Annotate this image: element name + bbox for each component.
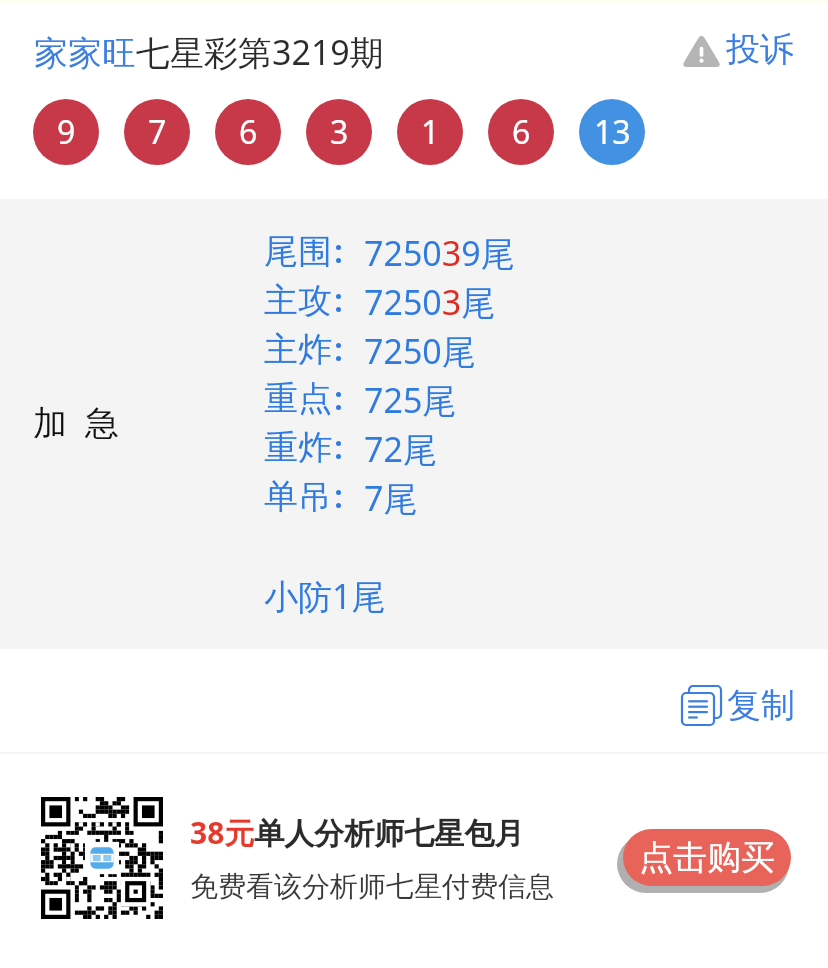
other: Copy <box>682 686 722 726</box>
staticText: 72尾 <box>364 426 437 472</box>
staticText: 72503尾 <box>364 279 496 325</box>
staticText: 725039尾 <box>364 230 515 276</box>
staticText: 单吊 <box>264 475 332 518</box>
button[interactable]: 13 <box>579 99 645 165</box>
staticText: 主攻 <box>264 279 332 322</box>
other: QR code <box>41 797 163 919</box>
staticText: 3 <box>330 110 349 154</box>
other: Warning <box>681 33 722 67</box>
staticText: 725尾 <box>364 377 457 423</box>
staticText: 6 <box>512 110 531 154</box>
staticText: 1 <box>421 110 440 154</box>
button[interactable]: 6 <box>215 99 281 165</box>
button[interactable]: 6 <box>488 99 554 165</box>
staticText: 7尾 <box>364 475 418 521</box>
button[interactable]: 点击购买 <box>623 829 791 886</box>
button[interactable]: QR code <box>0 754 828 968</box>
staticText: 重炸 <box>264 426 332 469</box>
staticText: 9 <box>57 110 76 154</box>
staticText: 免费看该分析师七星付费信息 <box>190 869 554 904</box>
button[interactable]: Copy <box>682 684 795 727</box>
staticText: 复制 <box>727 684 795 727</box>
button[interactable]: 家家旺七星彩第3219期 <box>34 29 384 75</box>
staticText: 13 <box>594 110 631 154</box>
button[interactable]: 9 <box>33 99 99 165</box>
staticText: 重点 <box>264 377 332 420</box>
staticText: 投诉 <box>726 28 794 71</box>
staticText: 主炸 <box>264 328 332 371</box>
button[interactable]: 3 <box>306 99 372 165</box>
staticText: 7 <box>148 110 167 154</box>
staticText: 尾围 <box>264 230 332 273</box>
staticText: 38元单人分析师七星包月 <box>190 812 525 853</box>
button[interactable]: 7 <box>124 99 190 165</box>
staticText: 家家旺七星彩第3219期 <box>34 29 384 75</box>
staticText: 加 急 <box>33 399 119 445</box>
button[interactable]: 1 <box>397 99 463 165</box>
staticText: 7250尾 <box>364 328 476 374</box>
staticText: 小防1尾 <box>264 573 386 619</box>
staticText: 点击购买 <box>639 836 775 879</box>
button[interactable]: Warning <box>681 28 794 71</box>
staticText: 6 <box>239 110 258 154</box>
